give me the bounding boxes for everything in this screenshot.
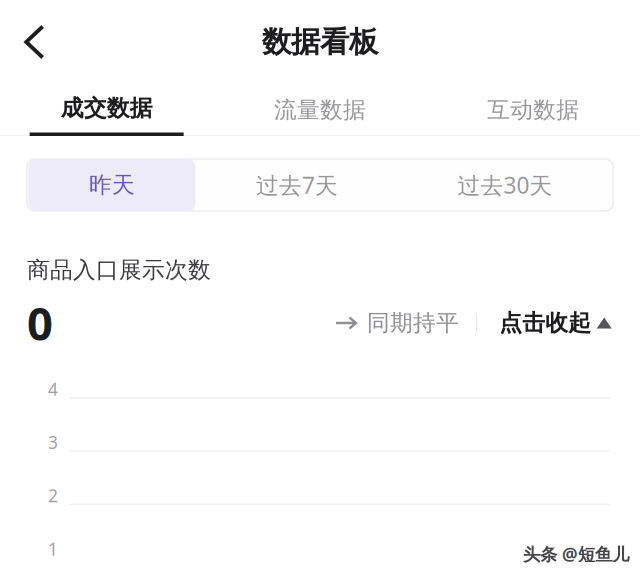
staticText: 2 (48, 484, 58, 507)
staticText: 头条 @短鱼儿 (523, 542, 629, 565)
staticText: 同期持平 (367, 309, 459, 337)
staticText: 3 (48, 431, 58, 454)
staticText: 过去7天 (256, 170, 338, 200)
button[interactable]: 互动数据 (427, 84, 640, 136)
button[interactable]: 成交数据 (0, 84, 213, 136)
staticText: 点击收起 (499, 309, 591, 337)
staticText: 流量数据 (274, 96, 366, 124)
button[interactable]: 过去7天 (195, 159, 398, 211)
staticText: 数据看板 (262, 24, 378, 60)
button[interactable]: Back (0, 10, 69, 74)
staticText: 过去30天 (457, 170, 552, 200)
button[interactable]: 过去30天 (398, 159, 611, 211)
staticText: 互动数据 (487, 96, 579, 124)
staticText: 头条 @短鱼儿 (522, 542, 628, 565)
staticText: 0 (27, 293, 53, 353)
staticText: 头条 @短鱼儿 (523, 541, 629, 564)
staticText: 头条 @短鱼儿 (524, 542, 630, 565)
staticText: 4 (48, 377, 58, 400)
button[interactable]: 点击收起 (477, 309, 612, 337)
staticText: 成交数据 (61, 94, 153, 122)
staticText: 昨天 (89, 171, 135, 199)
staticText: 头条 @短鱼儿 (523, 544, 629, 567)
button[interactable]: 昨天 (28, 159, 195, 211)
staticText: 1 (48, 537, 58, 560)
button[interactable]: 流量数据 (213, 84, 427, 136)
staticText: 商品入口展示次数 (27, 256, 211, 284)
